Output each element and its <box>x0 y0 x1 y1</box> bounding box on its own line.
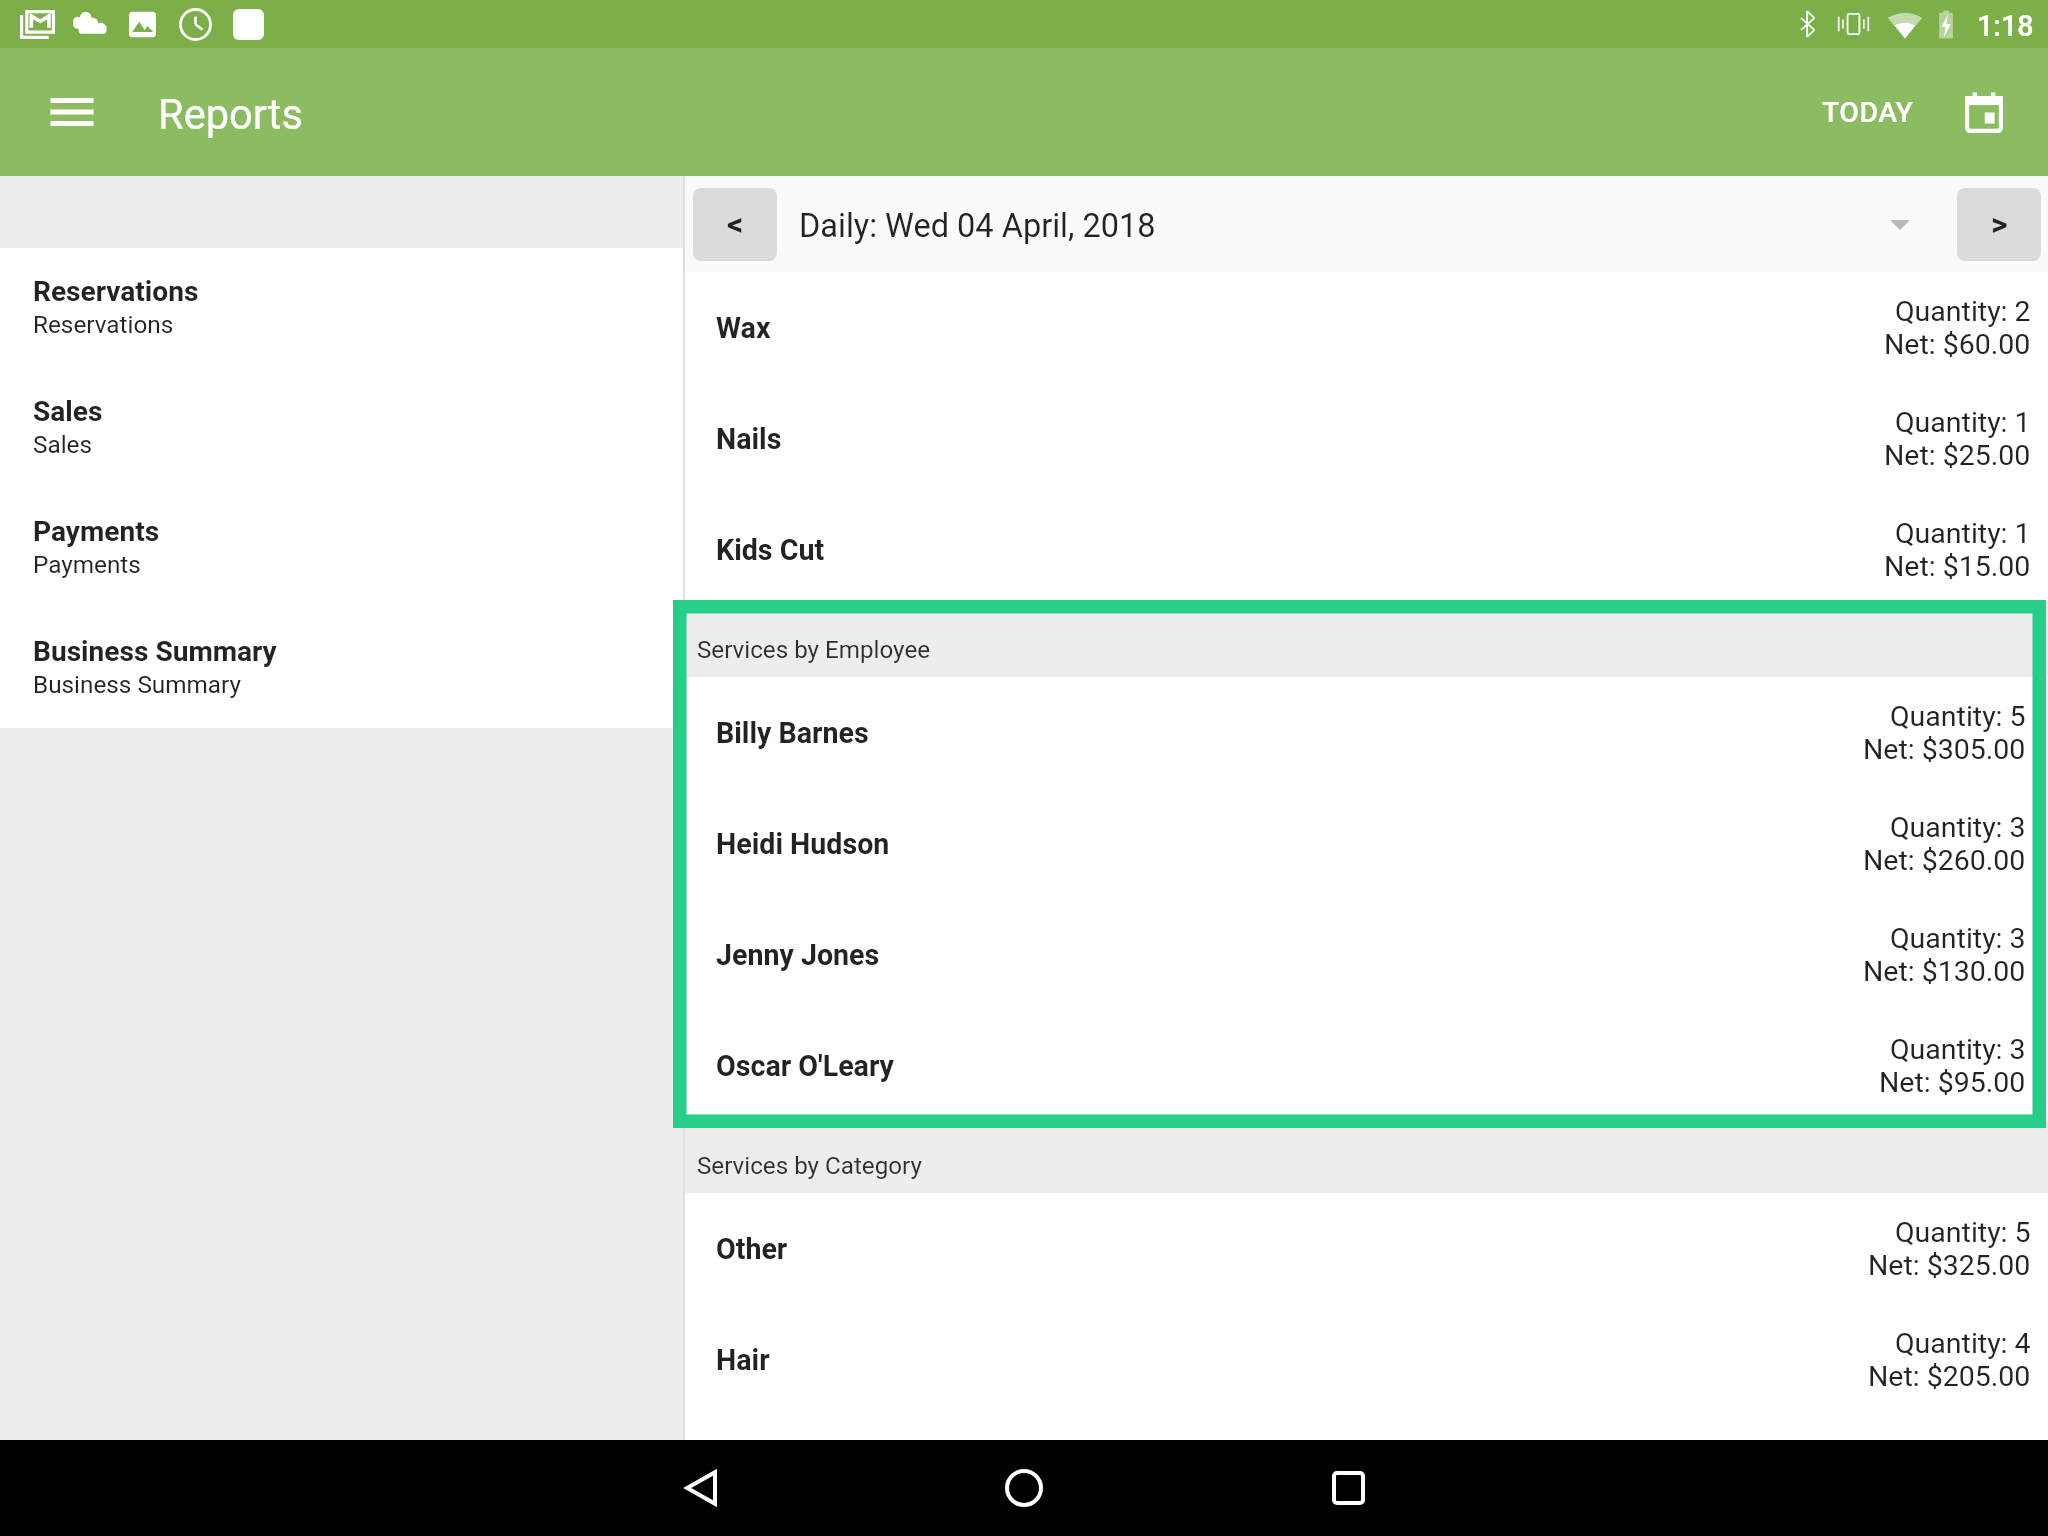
staticText: Quantity: 3 <box>1890 1033 2026 1066</box>
staticText: Net: $205.00 <box>1868 1360 2031 1393</box>
staticText: Net: $260.00 <box>1863 844 2026 877</box>
button[interactable]: Reservations <box>0 248 683 368</box>
staticText: Payments <box>33 515 160 548</box>
staticText: Sales <box>33 395 103 428</box>
staticText: Net: $305.00 <box>1863 733 2026 766</box>
staticText: Net: $60.00 <box>1884 328 2031 361</box>
button[interactable]: Change report period <box>1873 188 1927 261</box>
button[interactable]: Open navigation menu <box>38 78 106 146</box>
button[interactable]: TODAY <box>1796 76 1940 148</box>
button[interactable]: Nails <box>685 383 2048 494</box>
staticText: Quantity: 5 <box>1895 1216 2031 1249</box>
staticText: Quantity: 1 <box>1895 517 2031 550</box>
staticText: Quantity: 2 <box>1895 295 2031 328</box>
button[interactable]: Other <box>685 1193 2048 1304</box>
button[interactable]: Wax <box>685 272 2048 383</box>
staticText: Hair <box>716 1343 770 1377</box>
button[interactable]: Recent apps <box>1300 1440 1396 1536</box>
button[interactable]: Pick date <box>1950 76 2018 148</box>
staticText: Business Summary <box>33 635 277 668</box>
staticText: Net: $95.00 <box>1879 1066 2026 1099</box>
staticText: Quantity: 1 <box>1895 406 2031 439</box>
button[interactable]: Billy Barnes <box>685 677 2048 788</box>
staticText: < <box>727 205 744 243</box>
staticText: Quantity: 5 <box>1890 700 2026 733</box>
staticText: Sales <box>33 430 92 458</box>
staticText: Oscar O'Leary <box>716 1049 894 1083</box>
button[interactable]: Payments <box>0 488 683 608</box>
staticText: Nails <box>716 422 782 456</box>
staticText: Services by Category <box>697 1152 922 1180</box>
staticText: Quantity: 3 <box>1890 811 2026 844</box>
staticText: Wax <box>716 311 771 345</box>
staticText: Quantity: 3 <box>1890 922 2026 955</box>
button[interactable]: Home <box>976 1440 1072 1536</box>
staticText: Net: $15.00 <box>1884 550 2031 583</box>
button[interactable]: Next day <box>1957 188 2041 261</box>
staticText: Reservations <box>33 310 174 338</box>
staticText: Reports <box>158 90 303 139</box>
staticText: TODAY <box>1822 96 1914 129</box>
button[interactable]: Previous day <box>693 188 777 261</box>
staticText: Reservations <box>33 275 199 308</box>
button[interactable]: Back <box>652 1440 748 1536</box>
button[interactable]: Hair <box>685 1304 2048 1415</box>
button[interactable]: Business Summary <box>0 608 683 728</box>
staticText: Net: $25.00 <box>1884 439 2031 472</box>
staticText: Quantity: 4 <box>1895 1327 2031 1360</box>
button[interactable]: Kids Cut <box>685 494 2048 605</box>
staticText: Services by Employee <box>697 636 931 664</box>
staticText: Billy Barnes <box>716 716 869 750</box>
staticText: Net: $325.00 <box>1868 1249 2031 1282</box>
button[interactable]: Sales <box>0 368 683 488</box>
staticText: Payments <box>33 550 141 578</box>
staticText: Daily: Wed 04 April, 2018 <box>799 207 1156 245</box>
button[interactable]: Jenny Jones <box>685 899 2048 1010</box>
staticText: Kids Cut <box>716 533 825 567</box>
staticText: > <box>1991 205 2008 243</box>
staticText: Heidi Hudson <box>716 827 890 861</box>
staticText: Net: $130.00 <box>1863 955 2026 988</box>
staticText: Jenny Jones <box>716 938 880 972</box>
button[interactable]: Oscar O'Leary <box>685 1010 2048 1121</box>
staticText: Business Summary <box>33 670 241 698</box>
staticText: 1:18 <box>1977 9 2034 43</box>
button[interactable]: Heidi Hudson <box>685 788 2048 899</box>
staticText: Other <box>716 1232 788 1266</box>
